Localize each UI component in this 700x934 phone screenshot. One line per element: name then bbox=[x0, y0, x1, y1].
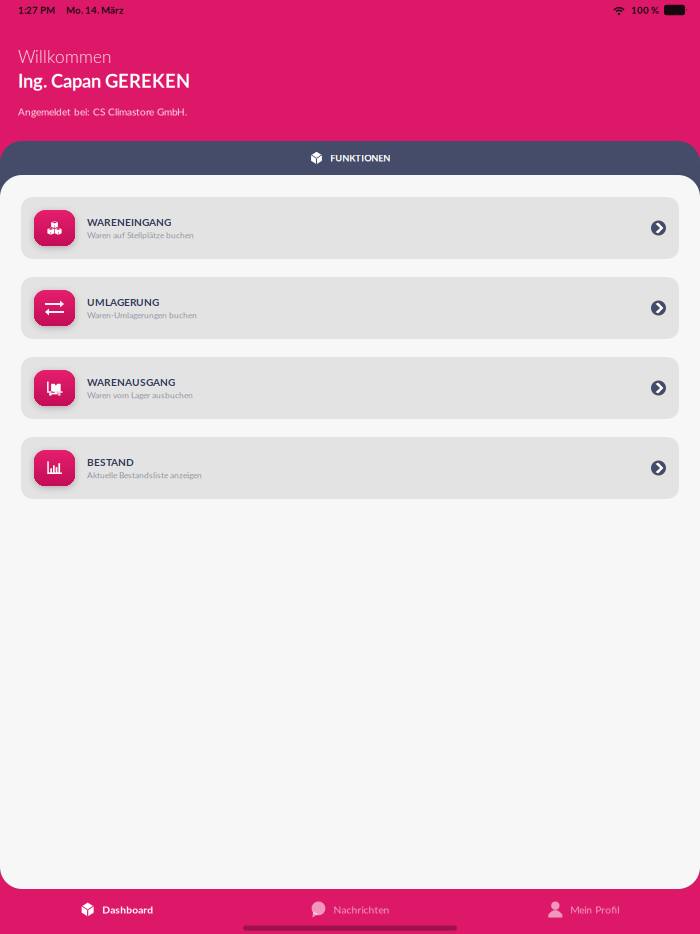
button[interactable]: Dashboard bbox=[0, 893, 233, 925]
button[interactable]: WARENEINGANG bbox=[21, 197, 679, 259]
button[interactable]: Nachrichten bbox=[233, 893, 467, 925]
staticText: 1:27 PM bbox=[18, 4, 55, 16]
button[interactable]: UMLAGERUNG bbox=[21, 277, 679, 339]
staticText: Nachrichten bbox=[333, 903, 389, 916]
staticText: Ing. Capan GEREKEN bbox=[18, 70, 190, 92]
staticText: FUNKTIONEN bbox=[330, 152, 390, 163]
staticText: UMLAGERUNG bbox=[87, 296, 159, 308]
staticText: WARENEINGANG bbox=[87, 216, 171, 228]
button[interactable]: WARENAUSGANG bbox=[21, 357, 679, 419]
staticText: Waren auf Stellplätze buchen bbox=[87, 230, 194, 240]
staticText: Waren vom Lager ausbuchen bbox=[87, 390, 193, 400]
staticText: WARENAUSGANG bbox=[87, 376, 175, 388]
staticText: Mo. 14. März bbox=[66, 4, 123, 16]
staticText: Waren-Umlagerungen buchen bbox=[87, 310, 197, 320]
staticText: Angemeldet bei: CS Climastore GmbH. bbox=[18, 106, 187, 118]
button[interactable]: BESTAND bbox=[21, 437, 679, 499]
staticText: Mein Profil bbox=[570, 903, 619, 916]
staticText: Willkommen bbox=[18, 46, 111, 67]
button[interactable]: Mein Profil bbox=[467, 893, 700, 925]
staticText: Dashboard bbox=[102, 903, 153, 916]
staticText: BESTAND bbox=[87, 456, 134, 468]
staticText: 100 % bbox=[631, 4, 659, 16]
staticText: Aktuelle Bestandsliste anzeigen bbox=[87, 470, 202, 480]
